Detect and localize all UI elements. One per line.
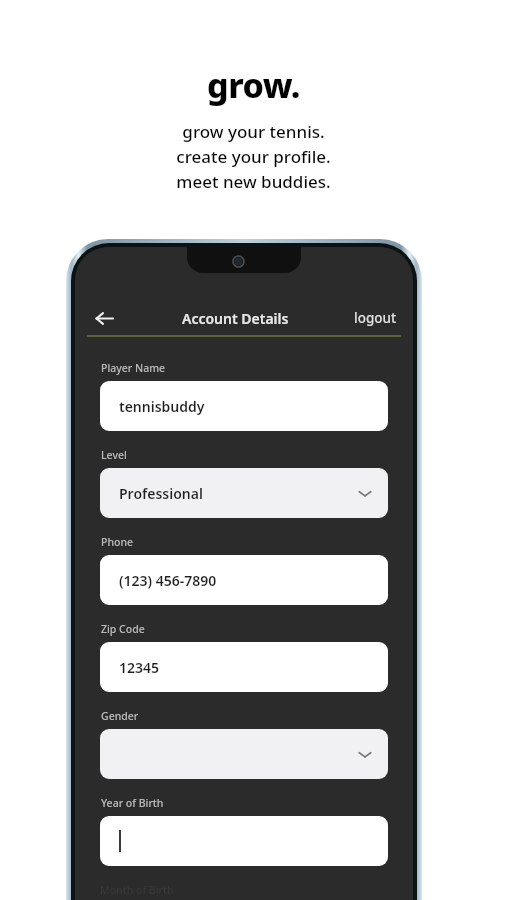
button[interactable]: tennisbuddy (100, 381, 388, 431)
button[interactable] (100, 729, 388, 779)
staticText: Zip Code (101, 622, 145, 636)
button[interactable]: (123) 456-7890 (100, 555, 388, 605)
button[interactable]: Professional (100, 468, 388, 518)
staticText: Professional (119, 484, 203, 503)
staticText: meet new buddies. (176, 170, 331, 193)
button[interactable]: logout (352, 305, 399, 331)
staticText: grow your tennis. (182, 120, 325, 143)
staticText: (123) 456-7890 (119, 571, 217, 590)
staticText: Year of Birth (101, 796, 164, 810)
staticText: create your profile. (176, 145, 331, 168)
staticText: tennisbuddy (119, 397, 205, 416)
button[interactable]: Back (89, 303, 119, 333)
staticText: Phone (101, 535, 134, 549)
staticText: grow. (207, 62, 301, 108)
button[interactable] (100, 816, 388, 866)
staticText: Account Details (182, 309, 289, 328)
staticText: 12345 (119, 658, 160, 677)
staticText: logout (354, 309, 397, 327)
staticText: Month of Birth (100, 883, 174, 897)
staticText: Level (101, 448, 127, 462)
button[interactable]: 12345 (100, 642, 388, 692)
staticText: Gender (101, 709, 139, 723)
staticText: Player Name (101, 361, 166, 375)
